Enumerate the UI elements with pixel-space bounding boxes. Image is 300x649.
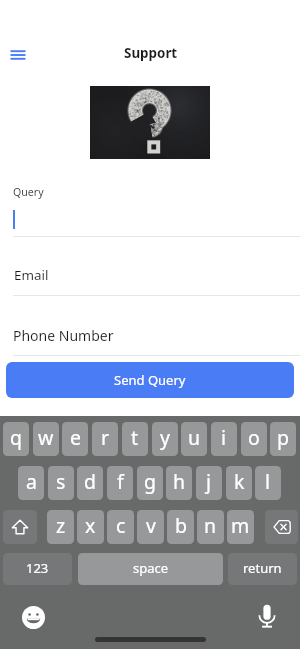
staticText: j	[206, 468, 212, 495]
button[interactable]: Emoji	[22, 606, 45, 629]
button[interactable]: i	[211, 422, 237, 456]
staticText: a	[26, 468, 37, 495]
staticText: k	[234, 468, 245, 495]
button[interactable]: w	[33, 422, 59, 456]
button[interactable]: n	[197, 510, 224, 544]
staticText: m	[231, 512, 250, 539]
staticText: space	[133, 559, 169, 577]
staticText: Phone Number	[13, 326, 114, 345]
button[interactable]: s	[48, 466, 74, 500]
button[interactable]: r	[92, 422, 118, 456]
staticText: x	[85, 512, 96, 539]
button[interactable]: b	[167, 510, 194, 544]
button[interactable]: 123	[3, 553, 72, 585]
button[interactable]: Menu	[4, 41, 32, 69]
staticText: e	[70, 424, 81, 451]
staticText: n	[204, 512, 217, 539]
button[interactable]: l	[255, 466, 281, 500]
staticText: return	[243, 559, 282, 577]
button[interactable]: c	[107, 510, 134, 544]
button[interactable]: g	[137, 466, 163, 500]
staticText: o	[248, 424, 260, 451]
staticText: f	[117, 468, 124, 495]
button[interactable]: a	[18, 466, 44, 500]
staticText: c	[116, 512, 126, 539]
staticText: h	[173, 468, 186, 495]
staticText: u	[188, 424, 201, 451]
button[interactable]: d	[77, 466, 103, 500]
button[interactable]: q	[3, 422, 29, 456]
button[interactable]: return	[228, 553, 297, 585]
button[interactable]: e	[62, 422, 88, 456]
button[interactable]: o	[241, 422, 267, 456]
staticText: t	[131, 424, 139, 451]
staticText: w	[38, 424, 54, 451]
button[interactable]: f	[107, 466, 133, 500]
button[interactable]: Backspace	[265, 510, 298, 544]
button[interactable]: x	[77, 510, 104, 544]
staticText: s	[56, 468, 66, 495]
button[interactable]: m	[227, 510, 254, 544]
staticText: Email	[14, 266, 49, 284]
staticText: Query	[13, 185, 44, 199]
staticText: d	[84, 468, 96, 495]
staticText: 123	[26, 559, 49, 577]
staticText: Support	[124, 44, 178, 62]
staticText: y	[160, 424, 170, 451]
button[interactable]: Send Query	[6, 362, 294, 398]
staticText: p	[277, 424, 289, 451]
button[interactable]: t	[122, 422, 148, 456]
staticText: Send Query	[114, 371, 186, 389]
button[interactable]: z	[47, 510, 74, 544]
button[interactable]: Shift	[3, 510, 37, 544]
staticText: i	[221, 424, 227, 451]
button[interactable]: j	[196, 466, 222, 500]
button[interactable]: h	[166, 466, 192, 500]
staticText: g	[144, 468, 156, 495]
staticText: z	[56, 512, 66, 539]
staticText: l	[265, 468, 271, 495]
button[interactable]: u	[181, 422, 207, 456]
button[interactable]: v	[137, 510, 164, 544]
staticText: b	[175, 512, 187, 539]
button[interactable]: space	[78, 553, 223, 585]
staticText: r	[101, 424, 110, 451]
button[interactable]: y	[152, 422, 178, 456]
button[interactable]: Dictation	[255, 604, 279, 628]
button[interactable]: k	[226, 466, 252, 500]
button[interactable]: p	[270, 422, 296, 456]
staticText: v	[146, 512, 156, 539]
staticText: q	[10, 424, 22, 451]
